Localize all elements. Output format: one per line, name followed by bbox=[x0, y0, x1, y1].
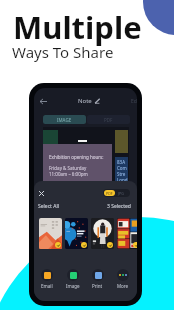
button[interactable] bbox=[39, 218, 62, 249]
button[interactable]: Image bbox=[60, 269, 85, 289]
staticText: Multiple bbox=[13, 6, 142, 48]
staticText: Lond bbox=[117, 177, 128, 183]
staticText: PDF bbox=[104, 117, 113, 123]
button[interactable]: JPG bbox=[115, 190, 126, 196]
staticText: Com bbox=[117, 165, 127, 171]
staticText: JPG bbox=[118, 191, 124, 196]
staticText: 11:00am – 6:00pm bbox=[49, 171, 88, 177]
staticText: 3 Selected bbox=[107, 203, 131, 210]
button[interactable]: IMAGE bbox=[43, 115, 86, 124]
button[interactable]: Close bbox=[36, 188, 46, 198]
staticText: Print bbox=[92, 283, 103, 289]
staticText: Note bbox=[78, 97, 92, 105]
staticText: Image bbox=[66, 283, 80, 289]
button[interactable]: Email bbox=[34, 269, 60, 289]
button[interactable] bbox=[117, 218, 137, 249]
button[interactable]: Edit bbox=[131, 98, 137, 105]
button[interactable]: PDF bbox=[104, 190, 115, 196]
staticText: Friday & Saturday bbox=[49, 165, 87, 171]
button[interactable] bbox=[91, 218, 114, 249]
button[interactable]: Select All bbox=[38, 203, 59, 210]
staticText: 83A bbox=[117, 159, 126, 165]
staticText: More bbox=[117, 283, 129, 289]
staticText: PDF bbox=[106, 191, 113, 196]
button[interactable]: Print bbox=[85, 269, 110, 289]
button[interactable]: More bbox=[110, 269, 135, 289]
button[interactable] bbox=[65, 218, 88, 249]
button[interactable]: Back bbox=[38, 96, 49, 107]
staticText: Ways To Share bbox=[12, 42, 114, 62]
button[interactable]: PDF bbox=[87, 115, 130, 124]
staticText: IMAGE bbox=[57, 117, 72, 123]
staticText: Stre bbox=[117, 171, 126, 177]
staticText: Exhibition opening hours: bbox=[49, 154, 104, 160]
staticText: Email bbox=[41, 283, 53, 289]
